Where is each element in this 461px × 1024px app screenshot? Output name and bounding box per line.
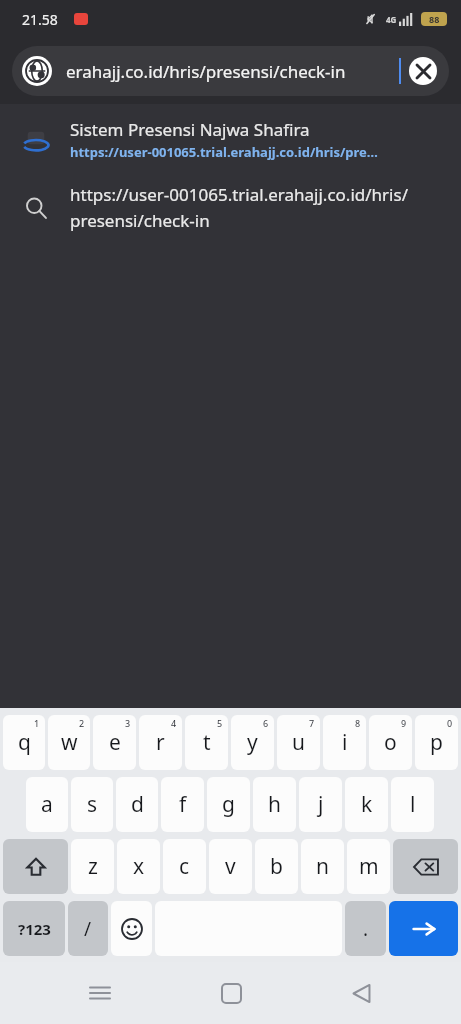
staticText: t [203,728,211,757]
staticText: d [131,790,144,819]
button[interactable]: Sistem Presensi Najwa Shafira [0,114,461,165]
staticText: g [222,790,235,819]
button[interactable]: b [255,839,298,894]
button[interactable]: r [139,715,182,770]
staticText: p [430,728,443,757]
staticText: h [268,790,281,819]
staticText: erahajj.co.id/hris/presensi/check-in [66,60,399,83]
staticText: 6 [263,717,269,729]
staticText: https://user-001065.trial.erahajj.co.id/… [70,183,445,232]
staticText: 7 [309,717,315,729]
staticText: 3 [125,717,131,729]
staticText: 0 [447,717,453,729]
button[interactable]: v [209,839,252,894]
button[interactable]: l [391,777,434,832]
button[interactable]: j [299,777,342,832]
button[interactable]: Back [331,963,391,1023]
button[interactable]: k [345,777,388,832]
button[interactable]: Home [201,963,261,1023]
staticText: / [84,916,92,942]
button[interactable]: Go [389,901,458,956]
staticText: a [41,790,53,819]
button[interactable]: i [323,715,366,770]
staticText: m [359,852,379,881]
staticText: ?123 [18,919,51,939]
staticText: q [18,728,31,757]
staticText: https://user-001065.trial.erahajj.co.id/… [70,143,378,161]
staticText: 88 [429,13,440,25]
staticText: x [133,852,145,881]
button[interactable]: o [369,715,412,770]
button[interactable]: n [301,839,344,894]
button[interactable]: Emoji [111,901,152,956]
button[interactable]: Recent apps [70,963,130,1023]
staticText: 2 [79,717,85,729]
staticText: 4G [386,14,397,25]
staticText: . [363,916,369,942]
staticText: r [156,728,165,757]
staticText: v [225,852,236,881]
button[interactable]: c [163,839,206,894]
staticText: f [179,790,187,819]
button[interactable]: ?123 [3,901,65,956]
staticText: i [342,728,348,757]
button[interactable]: u [277,715,320,770]
staticText: c [179,852,190,881]
button[interactable]: . [345,901,386,956]
staticText: y [247,728,258,757]
button[interactable]: p [415,715,458,770]
button[interactable]: w [48,715,90,770]
button[interactable]: s [71,777,113,832]
staticText: j [318,790,324,819]
button[interactable]: m [347,839,390,894]
staticText: n [316,852,329,881]
staticText: 1 [34,717,40,729]
staticText: Sistem Presensi Najwa Shafira [70,118,310,141]
staticText: 9 [401,717,407,729]
button[interactable]: z [71,839,114,894]
staticText: 5 [217,717,223,729]
staticText: 4 [171,717,177,729]
staticText: 21.58 [22,10,58,29]
button[interactable]: q [3,715,45,770]
button[interactable]: x [117,839,160,894]
staticText: w [61,728,78,757]
button[interactable]: / [68,901,108,956]
staticText: 8 [355,717,361,729]
button[interactable]: Shift [3,839,68,894]
button[interactable]: f [161,777,204,832]
staticText: l [410,790,416,819]
button[interactable]: https://user-001065.trial.erahajj.co.id/… [0,179,461,236]
staticText: z [88,852,98,881]
button[interactable]: Backspace [393,839,458,894]
button[interactable]: e [93,715,136,770]
staticText: k [361,790,373,819]
staticText: s [87,790,98,819]
button[interactable]: g [207,777,250,832]
staticText: o [384,728,397,757]
button[interactable]: Clear [409,57,437,85]
button[interactable]: erahajj.co.id/hris/presensi/check-in [12,46,449,96]
button[interactable]: y [231,715,274,770]
button[interactable]: t [185,715,228,770]
button[interactable]: h [253,777,296,832]
button[interactable]: a [26,777,68,832]
staticText: b [270,852,283,881]
staticText: e [109,728,121,757]
staticText: u [292,728,305,757]
button[interactable]: d [116,777,158,832]
